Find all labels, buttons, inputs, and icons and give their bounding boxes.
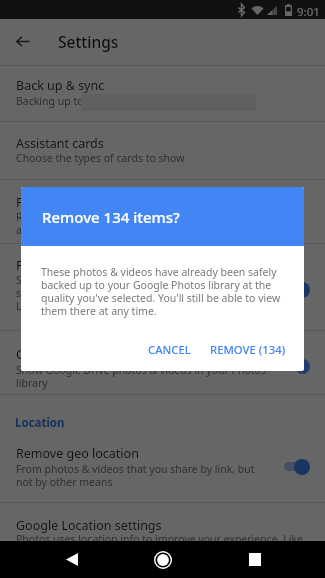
staticText: Remove 134 items?	[42, 207, 180, 227]
button[interactable]	[0, 502, 325, 542]
staticText: Learn more	[16, 299, 74, 313]
staticText: Photos uses location info to improve you…	[16, 532, 303, 546]
button[interactable]: Home	[141, 541, 184, 578]
staticText: These photos & videos have already been …	[41, 265, 286, 318]
button[interactable]	[0, 180, 325, 242]
button[interactable]: Back	[50, 541, 93, 578]
staticText: CANCEL	[148, 342, 191, 357]
button[interactable]	[0, 243, 325, 330]
button[interactable]: REMOVE (134)	[202, 334, 294, 365]
button[interactable]	[0, 65, 325, 120]
staticText: Face grouping	[16, 257, 101, 274]
staticText: Remove original items that have been alr…	[16, 210, 203, 237]
staticText: Google Drive	[16, 346, 93, 363]
staticText: Backing up to	[16, 94, 84, 108]
staticText: Free up device storage	[16, 194, 149, 211]
staticText: Back up & sync	[16, 77, 105, 94]
button[interactable]: CANCEL	[140, 334, 199, 365]
staticText: 9:01	[297, 4, 320, 20]
button[interactable]	[0, 331, 325, 396]
button[interactable]: Back	[4, 23, 41, 60]
staticText: From photos & videos that you share by l…	[16, 462, 255, 489]
staticText: REMOVE (134)	[210, 342, 286, 357]
staticText: Show Google Drive photos & videos in you…	[16, 363, 266, 390]
button[interactable]: Recents	[233, 541, 276, 578]
staticText: Settings	[58, 31, 119, 52]
button[interactable]	[0, 395, 325, 501]
staticText: Assistant cards	[16, 135, 104, 152]
button[interactable]	[0, 121, 325, 179]
staticText: Choose the types of cards to show	[16, 151, 185, 165]
staticText: Google Location settings	[16, 517, 162, 534]
staticText: Remove geo location	[16, 445, 139, 462]
staticText: Location	[15, 415, 65, 431]
staticText: See photos grouped by similar faces sinc…	[16, 273, 195, 300]
